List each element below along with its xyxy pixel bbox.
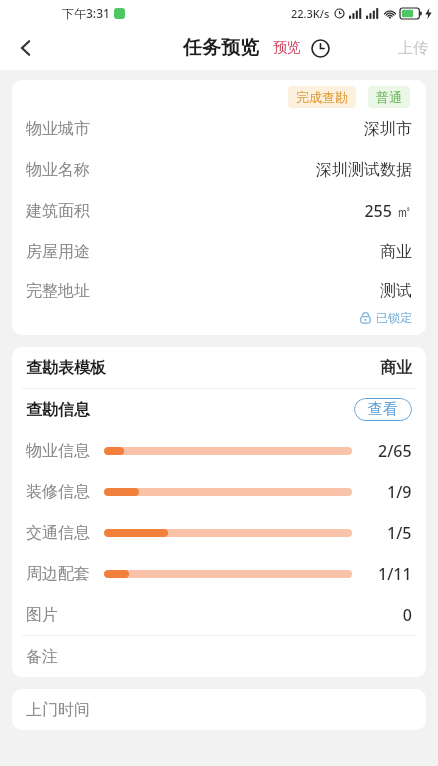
staticText: 预览: [273, 39, 301, 57]
staticText: 查看: [368, 400, 398, 419]
button[interactable]: 普通: [368, 86, 410, 108]
staticText: 1/9: [387, 481, 412, 503]
staticText: 普通: [376, 89, 402, 105]
button[interactable]: 查勘信息: [12, 389, 426, 430]
staticText: 物业名称: [26, 160, 90, 180]
staticText: 周边配套: [26, 564, 90, 584]
staticText: 1/11: [378, 563, 412, 585]
staticText: 商业: [380, 358, 412, 378]
staticText: 物业城市: [26, 119, 90, 139]
button[interactable]: 物业名称: [12, 149, 426, 190]
button[interactable]: 上传: [398, 39, 428, 58]
staticText: 装修信息: [26, 482, 90, 502]
staticText: 2/65: [378, 440, 412, 462]
staticText: 0: [402, 604, 412, 626]
staticText: 图片: [26, 605, 58, 625]
staticText: 已锁定: [376, 310, 412, 325]
staticText: 测试: [380, 281, 412, 301]
button[interactable]: 物业城市: [12, 108, 426, 149]
staticText: 1/5: [387, 522, 412, 544]
staticText: 上传: [398, 39, 428, 58]
button[interactable]: History: [309, 37, 331, 59]
button[interactable]: 物业信息: [12, 430, 426, 471]
staticText: 商业: [380, 242, 412, 262]
staticText: 交通信息: [26, 523, 90, 543]
staticText: 查勘表模板: [26, 358, 106, 378]
button[interactable]: 装修信息: [12, 471, 426, 512]
button[interactable]: 交通信息: [12, 512, 426, 553]
staticText: 22.3K/s: [291, 6, 330, 21]
button[interactable]: 完整地址: [12, 272, 426, 310]
staticText: 上门时间: [26, 700, 90, 720]
staticText: 查勘信息: [26, 400, 90, 420]
button[interactable]: 预览: [273, 39, 301, 57]
button[interactable]: 建筑面积: [12, 190, 426, 231]
staticText: 完成查勘: [296, 89, 348, 105]
staticText: 255 ㎡: [364, 200, 412, 222]
button[interactable]: 上门时间: [12, 689, 426, 730]
button[interactable]: 图片: [12, 594, 426, 635]
staticText: 备注: [26, 647, 58, 667]
button[interactable]: 查勘表模板: [12, 347, 426, 388]
button[interactable]: Back: [0, 26, 52, 70]
button[interactable]: 备注: [12, 636, 426, 677]
staticText: 深圳测试数据: [316, 160, 412, 180]
staticText: 任务预览: [183, 36, 259, 60]
staticText: 建筑面积: [26, 201, 90, 221]
button[interactable]: 完成查勘: [288, 86, 356, 108]
staticText: 物业信息: [26, 441, 90, 461]
staticText: 深圳市: [364, 119, 412, 139]
button[interactable]: 房屋用途: [12, 231, 426, 272]
button[interactable]: 查看: [354, 398, 412, 421]
staticText: 房屋用途: [26, 242, 90, 262]
staticText: 完整地址: [26, 281, 90, 301]
button[interactable]: 周边配套: [12, 553, 426, 594]
staticText: 下午3:31: [62, 5, 110, 21]
